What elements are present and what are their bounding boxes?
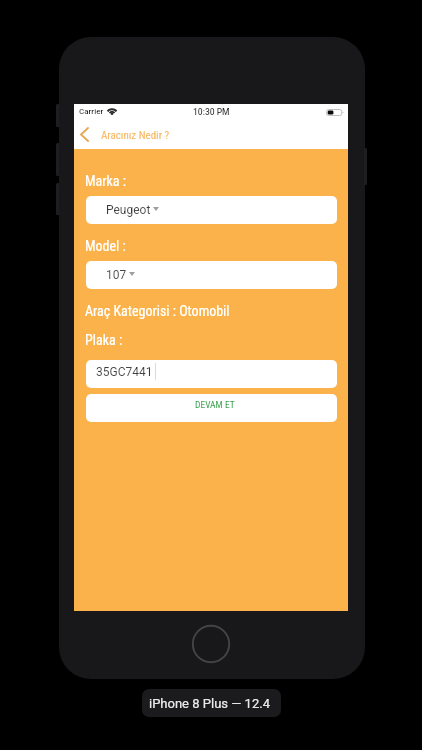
staticText: Model : (85, 238, 126, 254)
staticText: Araç Kategorisi : Otomobil (85, 303, 230, 319)
button[interactable]: Back (74, 124, 178, 147)
staticText: Plaka : (85, 332, 123, 348)
staticText: 107 (106, 268, 127, 282)
button[interactable]: 107 (86, 261, 337, 289)
staticText: 10:30 PM (193, 107, 230, 117)
button[interactable]: DEVAM ET (86, 394, 337, 422)
staticText: Peugeot (106, 203, 151, 217)
staticText: Marka : (85, 173, 127, 189)
staticText: iPhone 8 Plus — 12.4 (149, 696, 270, 711)
button[interactable]: Peugeot (86, 196, 337, 224)
staticText: Aracınız Nedir ? (101, 129, 170, 142)
staticText: 35GC7441 (96, 365, 153, 379)
staticText: Carrier (79, 107, 104, 116)
other: Back (80, 127, 89, 142)
staticText: DEVAM ET (195, 399, 235, 410)
button[interactable]: 35GC7441 (86, 360, 337, 388)
button[interactable]: Home (192, 625, 230, 663)
